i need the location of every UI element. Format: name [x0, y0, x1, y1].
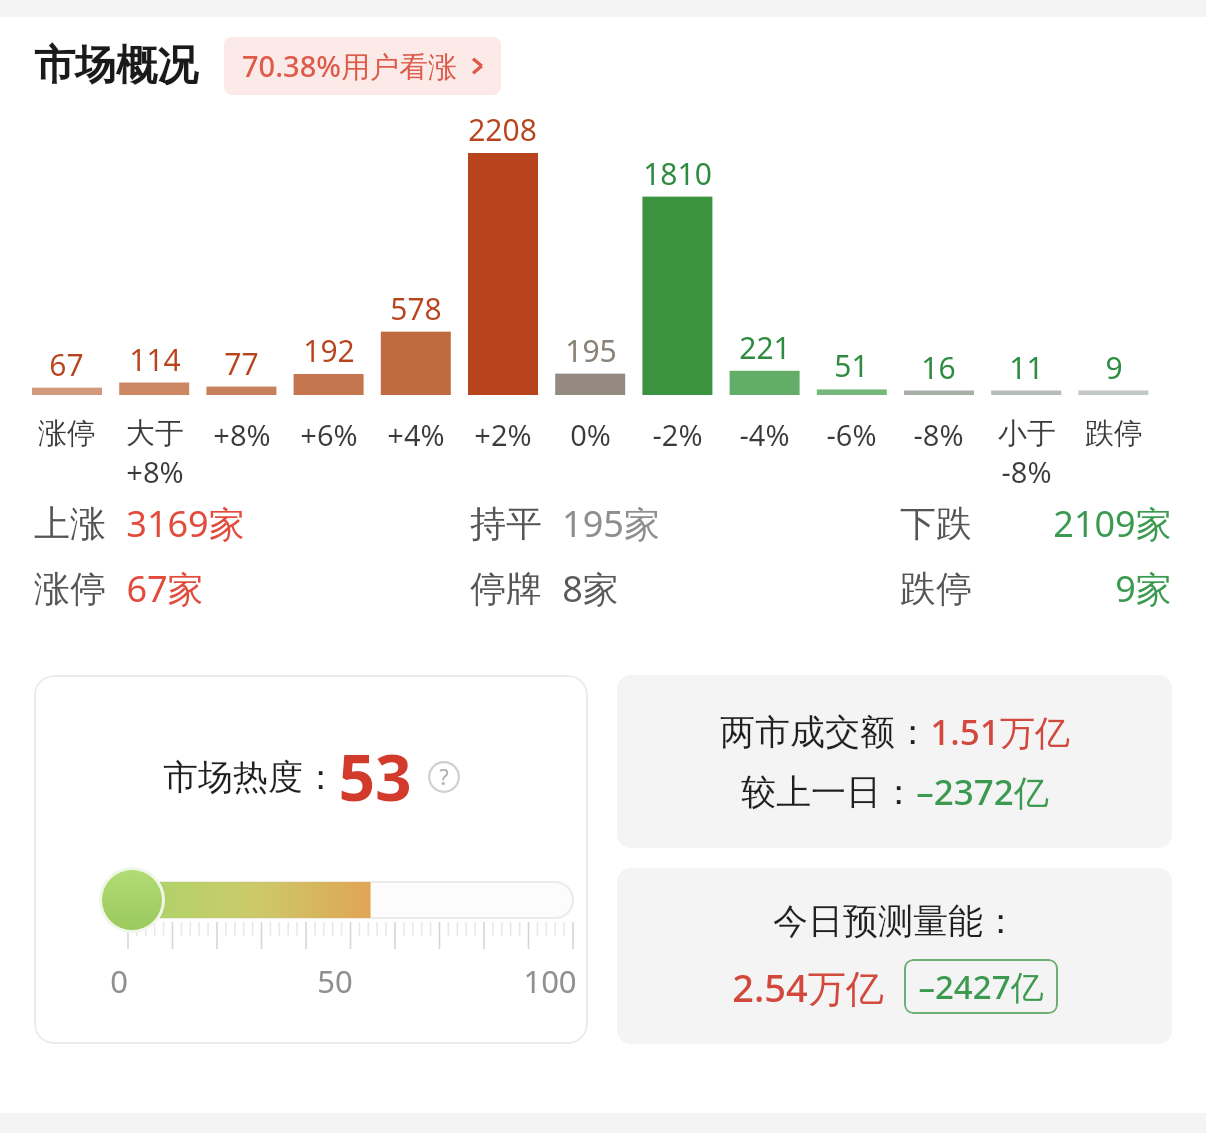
staticText: +4%: [387, 415, 445, 454]
staticText: 195家: [562, 499, 660, 548]
staticText: 今日预测量能：: [773, 899, 1018, 943]
staticText: 持平: [470, 501, 542, 546]
staticText: 50: [317, 960, 353, 1002]
staticText: 53: [338, 733, 412, 820]
staticText: -8%: [913, 415, 964, 454]
staticText: 大于: [126, 415, 184, 452]
staticText: 1.51万亿: [930, 708, 1070, 756]
staticText: 停牌: [470, 566, 542, 611]
staticText: 16: [921, 347, 956, 388]
button[interactable]: 70.38%用户看涨: [224, 37, 501, 95]
staticText: 8家: [562, 564, 619, 613]
staticText: 70.38%用户看涨: [242, 46, 457, 86]
staticText: 192: [303, 330, 355, 371]
staticText: 上涨: [34, 501, 106, 546]
staticText: 3169家: [126, 499, 245, 548]
staticText: +8%: [126, 452, 184, 491]
staticText: 221: [739, 327, 791, 368]
button[interactable]: 市场热度说明: [428, 761, 460, 793]
staticText: +6%: [300, 415, 358, 454]
staticText: 11: [1009, 347, 1044, 388]
staticText: 9: [1105, 347, 1123, 388]
staticText: 0%: [570, 415, 611, 454]
staticText: -8%: [1001, 452, 1052, 491]
staticText: 2208: [468, 109, 537, 150]
staticText: -6%: [826, 415, 877, 454]
staticText: -4%: [739, 415, 790, 454]
staticText: 较上一日：: [741, 770, 916, 814]
button[interactable]: 今日预测量能：: [617, 868, 1172, 1044]
staticText: 100: [523, 960, 577, 1002]
staticText: –2372亿: [916, 768, 1049, 816]
staticText: +2%: [474, 415, 532, 454]
button[interactable]: 两市成交额：: [617, 675, 1172, 848]
staticText: -2%: [652, 415, 703, 454]
staticText: 两市成交额：: [720, 710, 930, 754]
staticText: 涨停: [38, 415, 96, 452]
button[interactable]: 市场热度：: [34, 675, 588, 1044]
staticText: ?: [439, 763, 449, 792]
staticText: 578: [390, 288, 442, 329]
staticText: 0: [110, 960, 128, 1002]
staticText: 67: [49, 344, 84, 385]
staticText: 67家: [126, 564, 204, 613]
staticText: 1810: [643, 153, 712, 194]
staticText: +8%: [213, 415, 271, 454]
staticText: –2427亿: [918, 964, 1044, 1009]
staticText: 市场热度：: [163, 755, 338, 799]
staticText: 市场概况: [34, 40, 198, 92]
staticText: 77: [224, 343, 259, 384]
staticText: 跌停: [1085, 415, 1143, 452]
staticText: 跌停: [900, 566, 972, 611]
staticText: 2.54万亿: [732, 961, 884, 1013]
staticText: 51: [834, 345, 869, 386]
staticText: 9家: [1115, 564, 1172, 613]
staticText: 114: [129, 339, 181, 380]
staticText: 195: [565, 330, 617, 371]
staticText: 小于: [998, 415, 1056, 452]
staticText: 下跌: [900, 501, 972, 546]
staticText: 涨停: [34, 566, 106, 611]
staticText: 2109家: [1053, 499, 1172, 548]
